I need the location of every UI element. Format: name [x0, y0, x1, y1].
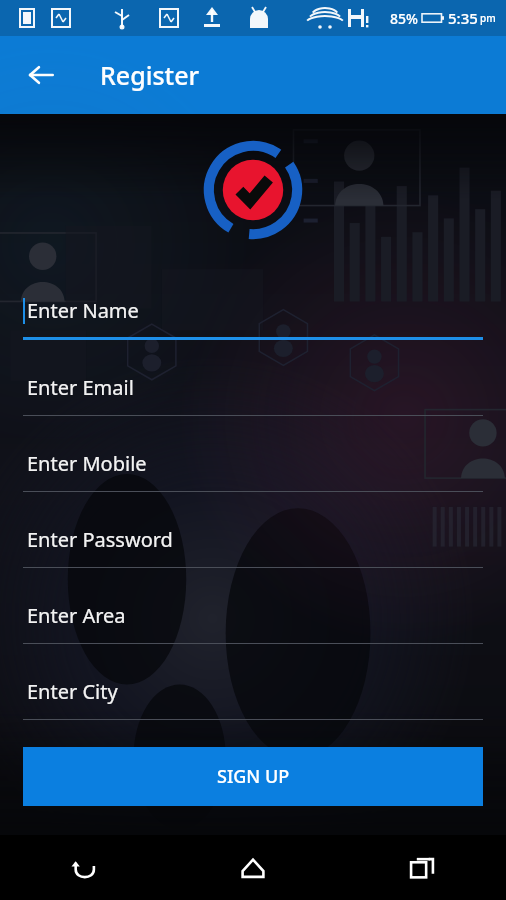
button[interactable]: Enter Area: [23, 588, 483, 644]
staticText: Enter Name: [27, 297, 139, 324]
staticText: 5:35: [448, 8, 478, 28]
staticText: Enter Mobile: [27, 450, 147, 477]
staticText: Enter Area: [27, 602, 126, 629]
button[interactable]: Enter Mobile: [23, 436, 483, 492]
button[interactable]: Back: [18, 52, 64, 98]
staticText: Enter Password: [27, 526, 173, 553]
button[interactable]: Home: [168, 835, 337, 900]
staticText: Register: [100, 58, 200, 92]
button[interactable]: Back: [0, 835, 168, 900]
staticText: Enter City: [27, 678, 118, 705]
staticText: Enter Email: [27, 374, 134, 401]
button[interactable]: Recents: [337, 835, 506, 900]
button[interactable]: Enter Name: [23, 284, 483, 340]
button[interactable]: Enter Email: [23, 360, 483, 416]
button[interactable]: SIGN UP: [23, 747, 483, 806]
staticText: pm: [480, 11, 496, 25]
button[interactable]: Enter Password: [23, 512, 483, 568]
staticText: 85%: [390, 9, 418, 28]
staticText: SIGN UP: [217, 764, 290, 789]
button[interactable]: Enter City: [23, 664, 483, 720]
